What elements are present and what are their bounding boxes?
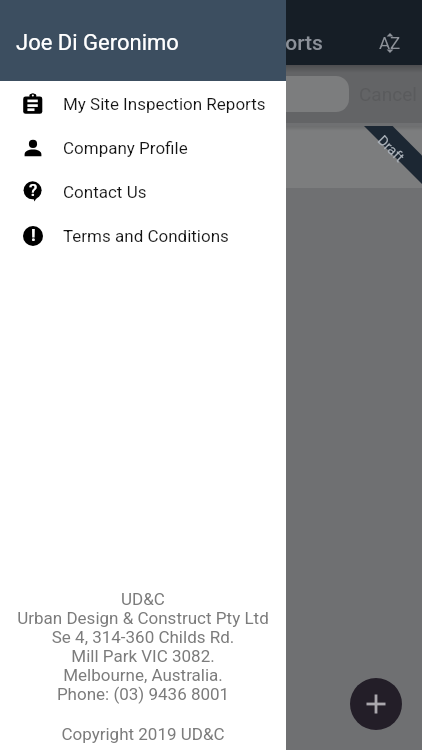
button[interactable]: Draft <box>0 126 422 188</box>
button[interactable]: Add report <box>350 678 402 730</box>
staticText: UD&C Urban Design & Construct Pty Ltd Se… <box>0 589 286 704</box>
staticText: My Site Inspection Reports <box>63 94 266 114</box>
button[interactable]: Company Profile <box>0 126 286 170</box>
staticText: Draft <box>375 132 408 165</box>
staticText: Company Profile <box>63 138 188 158</box>
staticText: Copyright 2019 UD&C <box>0 724 286 744</box>
button[interactable]: Cancel <box>359 83 417 105</box>
button[interactable]: Search <box>12 76 349 112</box>
button[interactable]: My Site Inspection Reports <box>0 82 286 126</box>
staticText: Terms and Conditions <box>63 226 229 246</box>
button[interactable]: ? <box>0 170 286 214</box>
staticText: ? <box>29 180 38 200</box>
staticText: ! <box>31 225 36 245</box>
button[interactable]: ! <box>0 214 286 258</box>
staticText: Joe Di Geronimo <box>16 30 179 56</box>
staticText: Reports <box>249 31 323 56</box>
staticText: Contact Us <box>63 182 147 202</box>
staticText: AZ <box>379 33 401 53</box>
button[interactable]: Sort A to Z <box>368 21 412 65</box>
